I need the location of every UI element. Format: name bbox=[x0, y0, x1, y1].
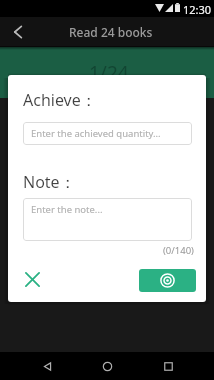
button[interactable]: Navigate up bbox=[6, 20, 30, 44]
button[interactable]: Close bbox=[17, 264, 47, 294]
staticText: 1/24 bbox=[89, 60, 129, 86]
staticText: (0/140) bbox=[163, 244, 194, 257]
button[interactable]: Recent apps bbox=[154, 352, 182, 380]
staticText: Read 24 books bbox=[69, 24, 153, 40]
staticText: 12:30 bbox=[183, 2, 212, 17]
staticText: Enter the note... bbox=[31, 203, 103, 216]
button[interactable]: Enter the achieved quantity... bbox=[23, 122, 192, 145]
button[interactable]: Back bbox=[33, 352, 61, 380]
button[interactable]: Home bbox=[93, 352, 121, 380]
button[interactable]: Confirm bbox=[139, 269, 196, 292]
staticText: Achieve： bbox=[23, 89, 97, 111]
staticText: Enter the achieved quantity... bbox=[31, 127, 161, 140]
staticText: Note： bbox=[23, 171, 76, 193]
button[interactable]: Enter the note... bbox=[23, 198, 192, 241]
